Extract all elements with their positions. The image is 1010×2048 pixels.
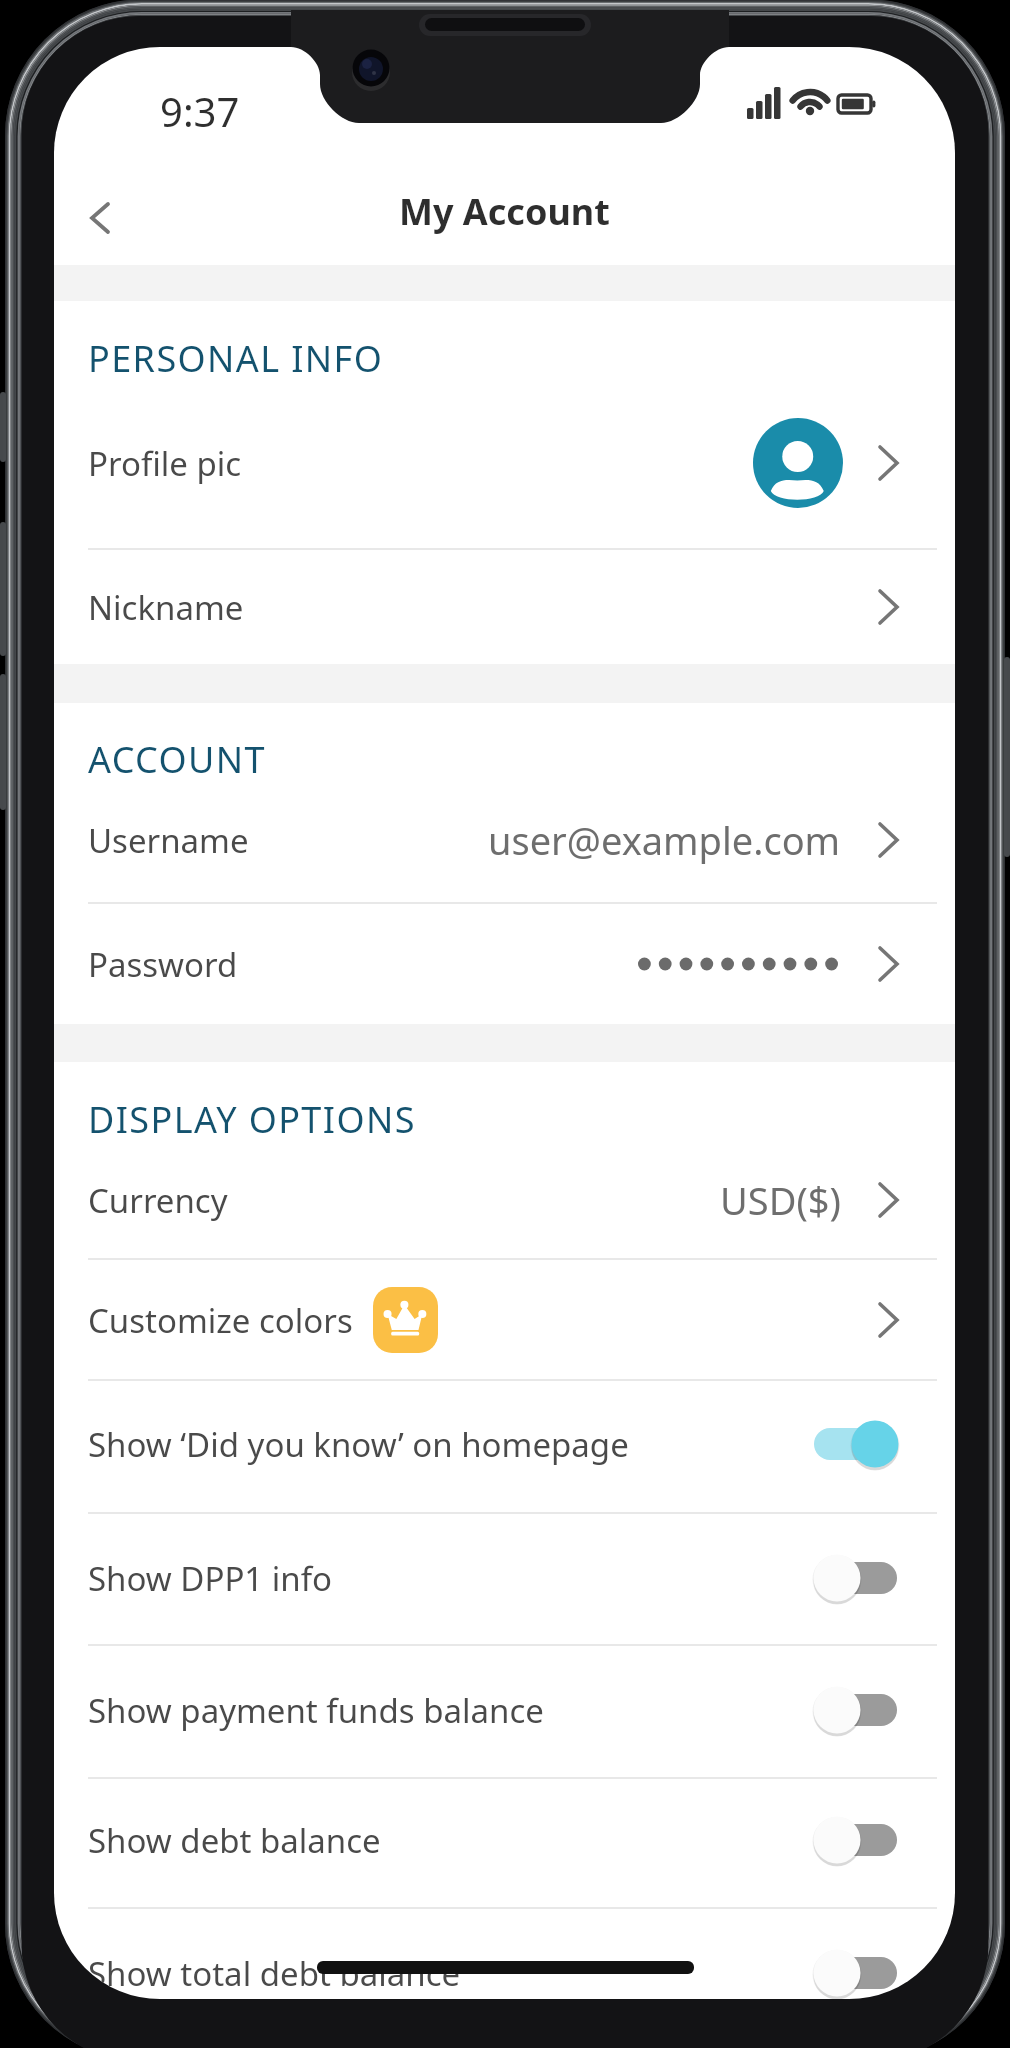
button[interactable]: Show DPP1 info, off bbox=[814, 1552, 899, 1604]
button[interactable]: Back bbox=[78, 188, 138, 248]
staticText: ACCOUNT bbox=[88, 735, 266, 784]
staticText: Nickname bbox=[88, 585, 244, 630]
staticText: Show ‘Did you know’ on homepage bbox=[88, 1422, 629, 1467]
button[interactable]: Show payment funds balance, off bbox=[814, 1684, 899, 1736]
button[interactable] bbox=[54, 301, 955, 548]
button[interactable] bbox=[54, 549, 955, 664]
staticText: Username bbox=[88, 818, 249, 863]
staticText: Show payment funds balance bbox=[88, 1688, 544, 1733]
staticText: Profile pic bbox=[88, 441, 242, 486]
staticText: Show debt balance bbox=[88, 1818, 381, 1863]
button[interactable] bbox=[54, 1513, 955, 1644]
staticText: Currency bbox=[88, 1178, 228, 1223]
button[interactable] bbox=[54, 1778, 955, 1907]
button[interactable] bbox=[54, 1908, 955, 1999]
staticText: PERSONAL INFO bbox=[88, 334, 384, 383]
button[interactable] bbox=[54, 1645, 955, 1777]
button[interactable]: Show ‘Did you know’ on homepage, on bbox=[814, 1418, 899, 1470]
staticText: Customize colors bbox=[88, 1298, 353, 1343]
staticText: DISPLAY OPTIONS bbox=[88, 1095, 416, 1144]
button[interactable] bbox=[54, 1259, 955, 1379]
button[interactable]: Show total debt balance, off bbox=[814, 1947, 899, 1999]
staticText: 9:37 bbox=[160, 84, 240, 138]
staticText: Show DPP1 info bbox=[88, 1556, 333, 1601]
staticText: Show total debt balance bbox=[88, 1951, 461, 1996]
button[interactable] bbox=[54, 1380, 955, 1512]
staticText: user@example.com bbox=[488, 814, 841, 866]
button[interactable] bbox=[54, 1062, 955, 1258]
button[interactable] bbox=[54, 703, 955, 902]
staticText: Password bbox=[88, 942, 238, 987]
staticText: My Account bbox=[399, 187, 610, 236]
button[interactable]: Show debt balance, off bbox=[814, 1814, 899, 1866]
staticText: USD($) bbox=[720, 1174, 841, 1226]
button[interactable] bbox=[54, 903, 955, 1024]
